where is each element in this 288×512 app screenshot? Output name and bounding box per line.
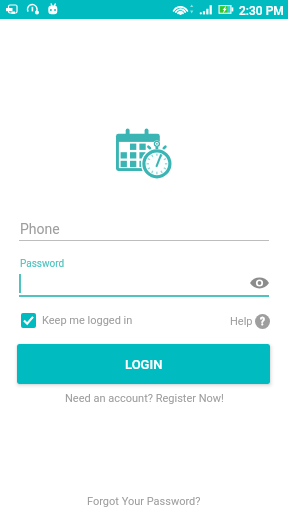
staticText: LOGIN	[125, 357, 163, 372]
staticText: ?	[260, 316, 265, 328]
button[interactable]: Need an account? Register Now!	[0, 390, 288, 406]
button[interactable]: Help	[230, 313, 270, 329]
staticText: Phone	[20, 221, 60, 237]
button[interactable]: LOGIN	[17, 344, 270, 384]
button[interactable]: Keep me logged in	[21, 312, 133, 328]
staticText: Forgot Your Password?	[87, 495, 201, 508]
button[interactable]: Forgot Your Password?	[0, 493, 288, 509]
button[interactable]: Show password	[249, 273, 270, 293]
staticText: Password	[20, 258, 65, 270]
staticText: Need an account? Register Now!	[65, 392, 224, 405]
staticText: Help	[230, 315, 253, 328]
staticText: Keep me logged in	[42, 314, 133, 327]
staticText: 2:30 PM	[239, 4, 284, 18]
